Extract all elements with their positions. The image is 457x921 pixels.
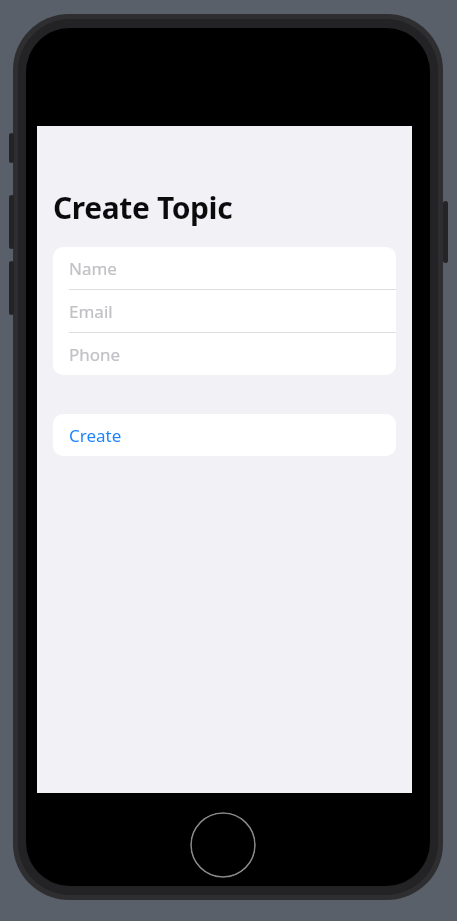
button[interactable]: Create	[53, 414, 396, 456]
staticText: Email	[69, 300, 113, 323]
button[interactable]: Silent switch	[9, 133, 14, 163]
staticText: Create	[69, 424, 122, 447]
staticText: Name	[69, 257, 117, 280]
button[interactable]: Volume down	[9, 261, 14, 315]
staticText: Create Topic	[53, 187, 233, 228]
staticText: Phone	[69, 343, 121, 366]
button[interactable]: Home	[190, 812, 256, 878]
button[interactable]: Email	[53, 290, 396, 332]
button[interactable]: Phone	[53, 333, 396, 375]
button[interactable]: Power	[443, 201, 448, 263]
button[interactable]: Name	[53, 247, 396, 289]
button[interactable]: Volume up	[9, 195, 14, 249]
